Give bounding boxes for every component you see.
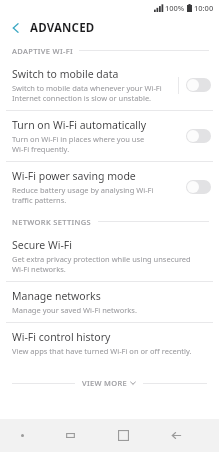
button[interactable]: Home (97, 419, 150, 452)
staticText: 100% (165, 3, 185, 13)
button[interactable]: Wi-Fi control history (0, 323, 219, 363)
staticText: Turn on Wi-Fi in places where you use (12, 134, 145, 144)
button[interactable]: Turn on Wi-Fi automatically (0, 111, 219, 161)
button[interactable]: Back (150, 419, 203, 452)
button[interactable]: Back (0, 15, 30, 41)
button[interactable]: Toggle (186, 78, 211, 92)
button[interactable]: Manage networks (0, 282, 219, 322)
staticText: Wi-Fi power saving mode (12, 169, 136, 183)
staticText: View apps that have turned Wi-Fi on or o… (12, 346, 192, 356)
staticText: Wi-Fi frequently. (12, 144, 70, 154)
staticText: Manage your saved Wi-Fi networks. (12, 305, 137, 315)
staticText: NETWORK SETTINGS (12, 217, 92, 227)
button[interactable]: Switch to mobile data (0, 60, 219, 110)
staticText: Turn on Wi-Fi automatically (12, 118, 147, 132)
staticText: Secure Wi-Fi (12, 238, 73, 252)
staticText: Get extra privacy protection while using… (12, 254, 191, 264)
staticText: Reduce battery usage by analysing Wi-Fi (12, 185, 154, 195)
button[interactable]: Wi-Fi power saving mode (0, 162, 219, 212)
button[interactable]: Toggle (186, 129, 211, 143)
staticText: Wi-Fi control history (12, 330, 111, 344)
staticText: VIEW MORE (82, 378, 127, 388)
staticText: Internet connection is slow or unstable. (12, 93, 152, 103)
staticText: Manage networks (12, 289, 101, 303)
staticText: ADVANCED (30, 20, 95, 36)
staticText: Switch to mobile data (12, 67, 119, 81)
staticText: Switch to mobile data whenever your Wi-F… (12, 83, 162, 93)
staticText: Wi-Fi networks. (12, 264, 66, 274)
button[interactable]: Recents (44, 419, 97, 452)
button[interactable]: Secure Wi-Fi (0, 231, 219, 281)
staticText: 10:00 (194, 3, 214, 13)
button[interactable]: VIEW MORE (0, 373, 219, 393)
staticText: traffic patterns. (12, 195, 67, 205)
staticText: ADAPTIVE WI-FI (12, 46, 73, 56)
button[interactable]: Toggle (186, 180, 211, 194)
